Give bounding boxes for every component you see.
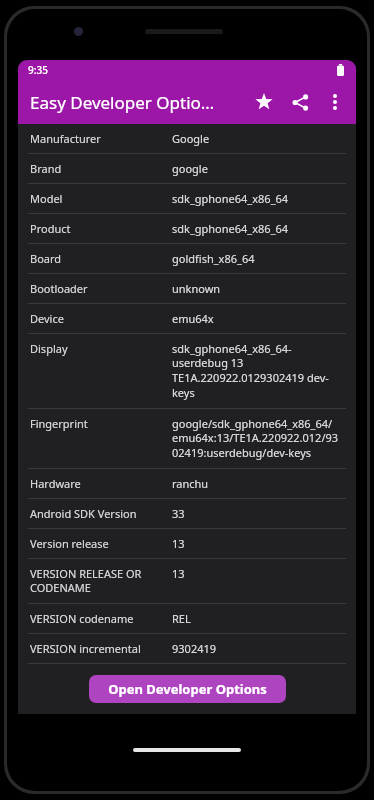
button[interactable]: Brand — [18, 154, 356, 183]
staticText: Easy Developer Optio… — [30, 91, 246, 114]
staticText: REL — [172, 611, 344, 626]
button[interactable]: VERSION incremental — [18, 634, 356, 663]
staticText: Display — [30, 341, 172, 356]
staticText: Device — [30, 311, 172, 326]
staticText: emu64x — [172, 311, 344, 326]
staticText: Bootloader — [30, 281, 172, 296]
staticText: sdk_gphone64_x86_64-userdebug 13 TE1A.22… — [172, 341, 344, 401]
button[interactable]: Manufacturer — [18, 124, 356, 153]
staticText: goldfish_x86_64 — [172, 251, 344, 266]
staticText: sdk_gphone64_x86_64 — [172, 221, 344, 236]
staticText: VERSION incremental — [30, 641, 172, 656]
staticText: 13 — [172, 536, 344, 551]
staticText: google — [172, 161, 344, 176]
staticText: sdk_gphone64_x86_64 — [172, 191, 344, 206]
button[interactable]: Open Developer Options — [89, 675, 286, 703]
staticText: VERSION codename — [30, 611, 172, 626]
staticText: 9:35 — [28, 63, 48, 77]
button[interactable]: Fingerprint — [18, 409, 356, 468]
staticText: 9302419 — [172, 641, 344, 656]
button[interactable]: VERSION RELEASE OR CODENAME — [18, 559, 356, 603]
button[interactable]: Device — [18, 304, 356, 333]
staticText: VERSION RELEASE OR CODENAME — [30, 566, 172, 596]
staticText: Fingerprint — [30, 416, 172, 431]
staticText: Google — [172, 131, 344, 146]
staticText: Product — [30, 221, 172, 236]
staticText: Manufacturer — [30, 131, 172, 146]
button[interactable]: More options — [318, 85, 352, 119]
staticText: Hardware — [30, 476, 172, 491]
button[interactable]: Version release — [18, 529, 356, 558]
staticText: Brand — [30, 161, 172, 176]
button[interactable]: Android SDK Version — [18, 499, 356, 528]
staticText: google/sdk_gphone64_x86_64/emu64x:13/TE1… — [172, 416, 344, 461]
button[interactable]: VERSION codename — [18, 604, 356, 633]
button[interactable]: Board — [18, 244, 356, 273]
staticText: 33 — [172, 506, 344, 521]
button[interactable]: Model — [18, 184, 356, 213]
staticText: unknown — [172, 281, 344, 296]
button[interactable]: Product — [18, 214, 356, 243]
staticText: Board — [30, 251, 172, 266]
staticText: 13 — [172, 566, 344, 581]
button[interactable]: Bootloader — [18, 274, 356, 303]
staticText: ranchu — [172, 476, 344, 491]
staticText: Open Developer Options — [108, 680, 267, 698]
button[interactable]: Share — [282, 84, 318, 120]
button[interactable]: Display — [18, 334, 356, 408]
staticText: Model — [30, 191, 172, 206]
button[interactable]: Hardware — [18, 469, 356, 498]
button[interactable]: Favorite — [246, 84, 282, 120]
staticText: Android SDK Version — [30, 506, 172, 521]
staticText: Version release — [30, 536, 172, 551]
